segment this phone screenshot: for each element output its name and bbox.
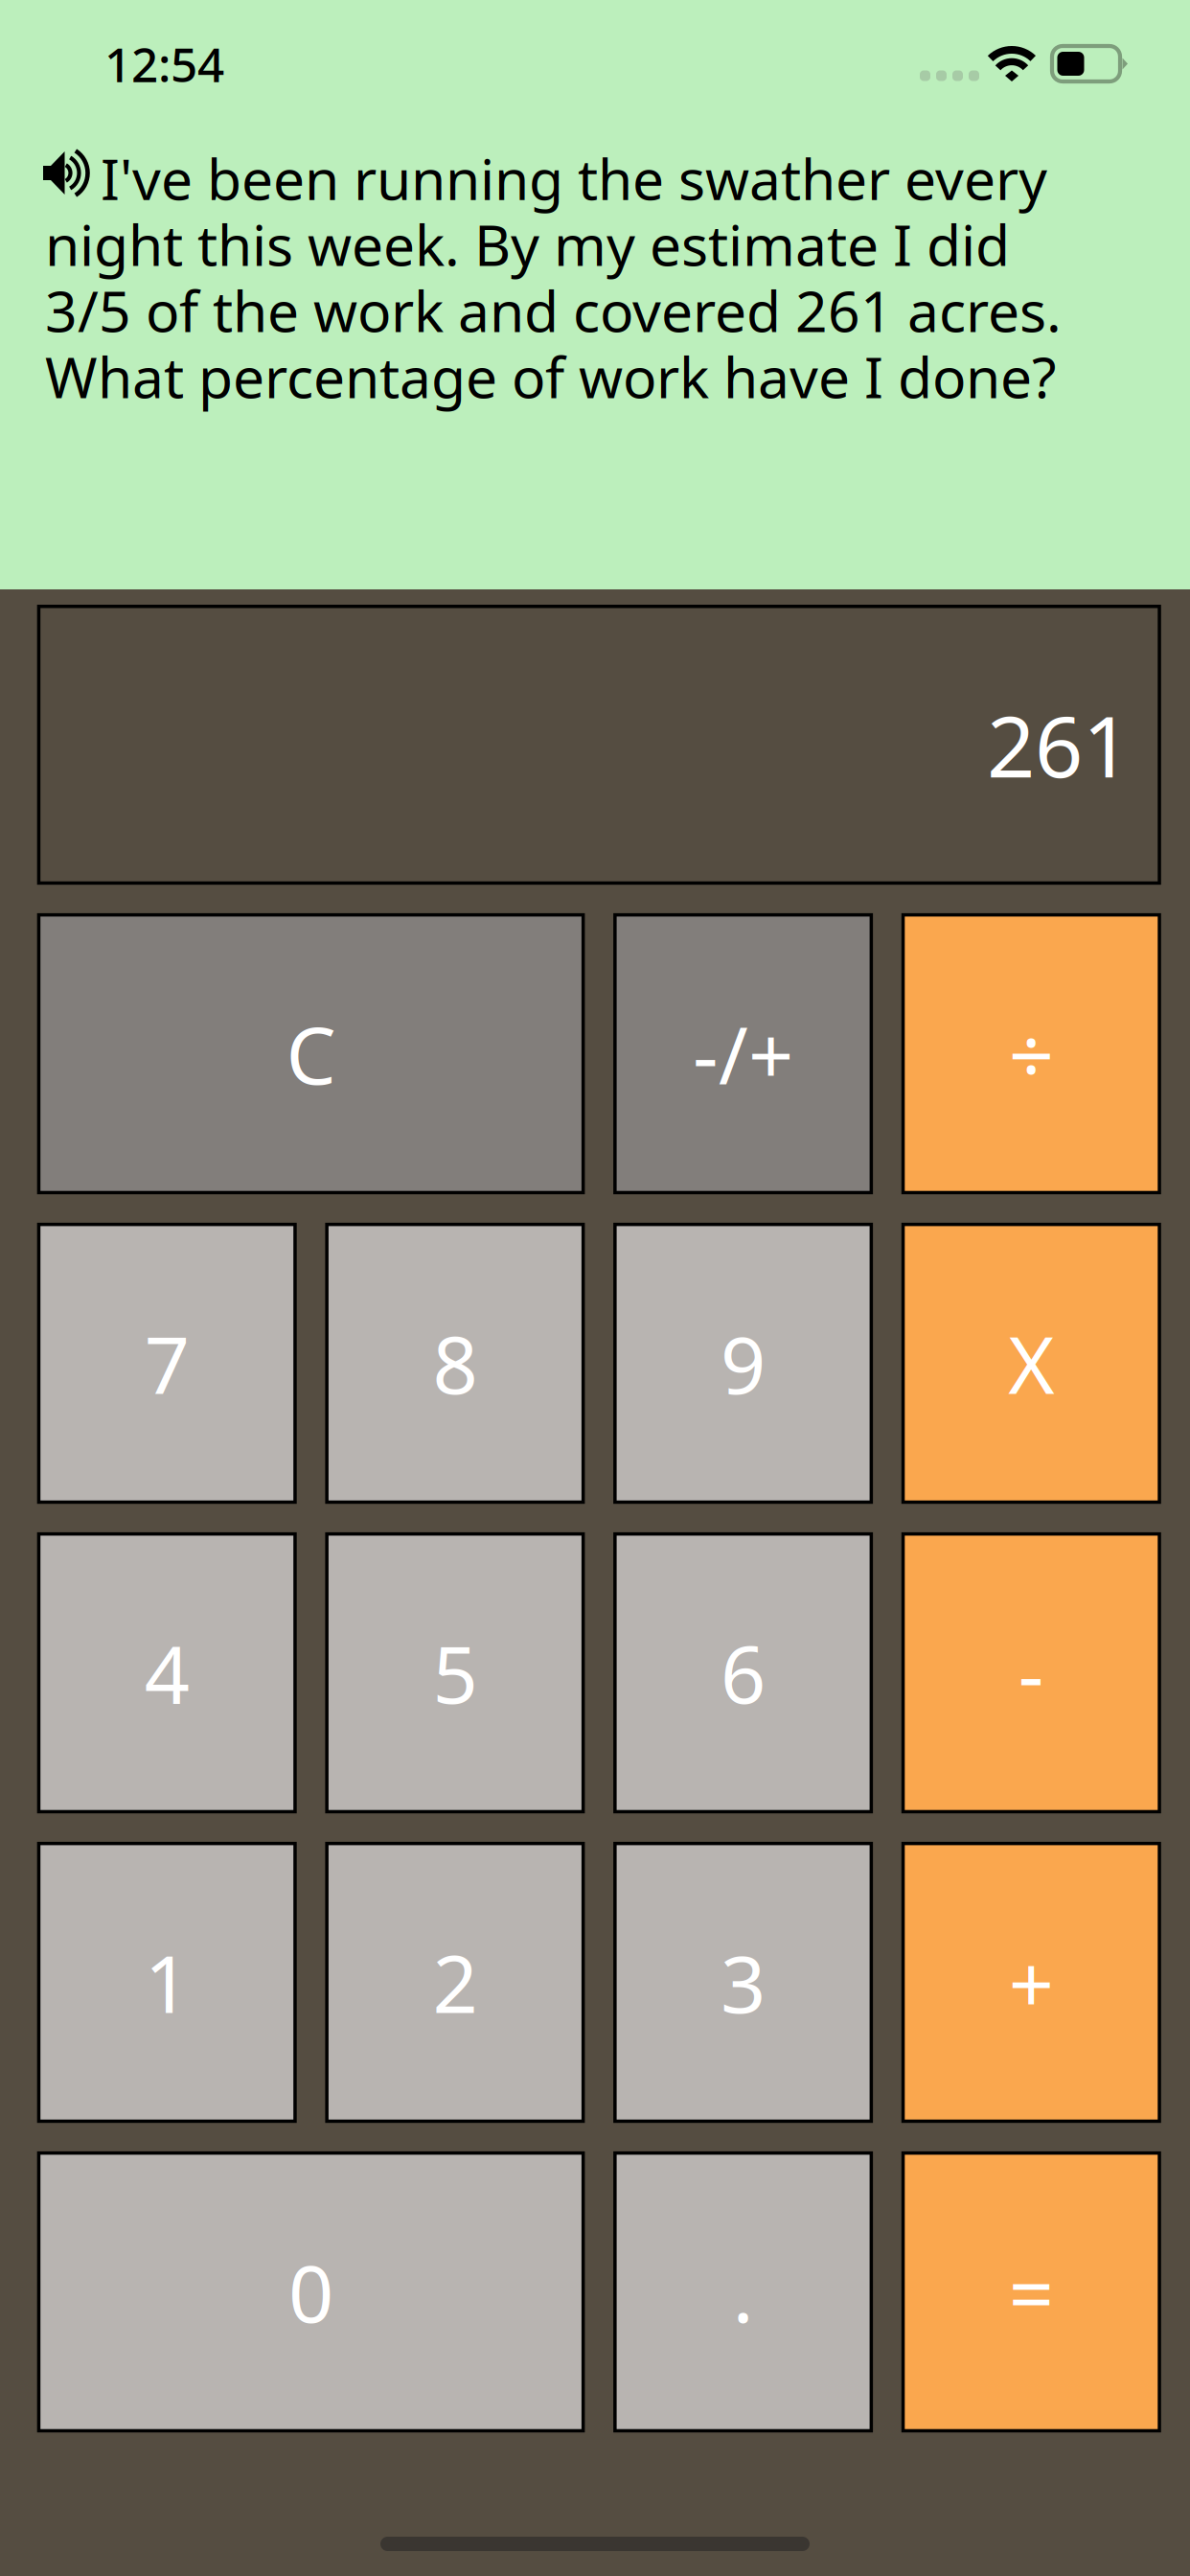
staticText: 7 bbox=[144, 1311, 189, 1416]
staticText: X bbox=[1008, 1311, 1054, 1416]
staticText: I've been running the swather every nigh… bbox=[45, 141, 1062, 414]
button[interactable]: 6 bbox=[615, 1534, 871, 1812]
button[interactable]: = bbox=[903, 2153, 1159, 2431]
staticText: 12:54 bbox=[104, 32, 224, 95]
staticText: 2 bbox=[433, 1930, 478, 2035]
button[interactable]: ÷ bbox=[903, 915, 1159, 1193]
staticText: 261 bbox=[987, 689, 1131, 801]
button[interactable]: 7 bbox=[39, 1224, 295, 1502]
button[interactable]: X bbox=[903, 1224, 1159, 1502]
staticText: 5 bbox=[433, 1620, 478, 1725]
staticText: = bbox=[1009, 2239, 1054, 2345]
staticText: C bbox=[286, 1001, 336, 1106]
staticText: 9 bbox=[721, 1311, 766, 1416]
staticText: 0 bbox=[288, 2239, 334, 2345]
staticText: - bbox=[1018, 1620, 1044, 1725]
staticText: 6 bbox=[721, 1620, 766, 1725]
button[interactable]: 5 bbox=[327, 1534, 583, 1812]
button[interactable]: 9 bbox=[615, 1224, 871, 1502]
button[interactable]: -/+ bbox=[615, 915, 871, 1193]
staticText: -/+ bbox=[693, 1001, 793, 1106]
staticText: 1 bbox=[144, 1930, 189, 2035]
staticText: . bbox=[733, 2239, 754, 2345]
staticText: 4 bbox=[144, 1620, 189, 1725]
button[interactable]: + bbox=[903, 1844, 1159, 2121]
staticText: 3 bbox=[721, 1930, 766, 2035]
button[interactable]: 2 bbox=[327, 1844, 583, 2121]
button[interactable]: 0 bbox=[39, 2153, 583, 2431]
staticText: 8 bbox=[433, 1311, 478, 1416]
button[interactable]: 1 bbox=[39, 1844, 295, 2121]
button[interactable]: C bbox=[39, 915, 583, 1193]
staticText: ÷ bbox=[1009, 1001, 1054, 1106]
button[interactable]: . bbox=[615, 2153, 871, 2431]
staticText: + bbox=[1009, 1930, 1054, 2035]
button[interactable]: - bbox=[903, 1534, 1159, 1812]
button[interactable]: 8 bbox=[327, 1224, 583, 1502]
button[interactable]: 4 bbox=[39, 1534, 295, 1812]
button[interactable]: 3 bbox=[615, 1844, 871, 2121]
